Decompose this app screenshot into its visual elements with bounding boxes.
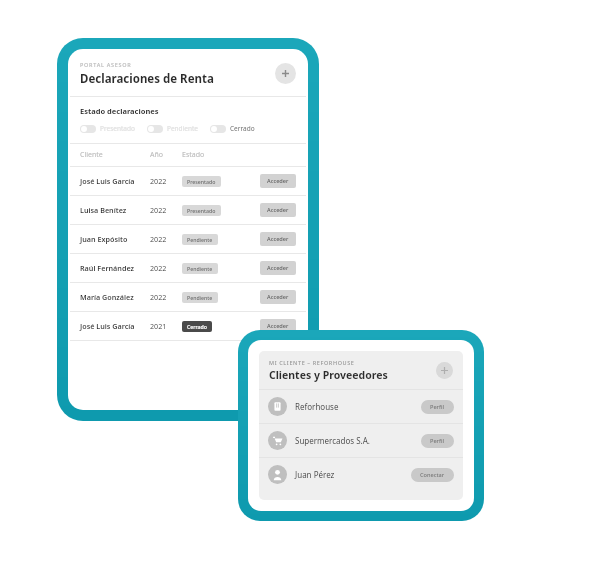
staticText: Perfil [430,437,445,445]
staticText: Pendiente [187,265,213,272]
staticText: Juan Pérez [295,469,411,480]
staticText: Pendiente [187,236,213,243]
staticText: 2022 [150,234,182,244]
button[interactable]: Acceder [260,203,296,217]
staticText: Año [150,150,182,160]
staticText: Acceder [267,206,289,214]
button[interactable]: José Luis García [70,312,306,340]
button[interactable]: Luisa Benítez [70,196,306,224]
staticText: Juan Expósito [80,234,150,244]
button[interactable]: Perfil [421,434,454,448]
staticText: Acceder [267,293,289,301]
button[interactable]: Acceder [260,174,296,188]
staticText: Raúl Fernández [80,263,150,273]
staticText: Clientes y Proveedores [269,368,388,382]
staticText: Pendiente [167,124,198,133]
button[interactable]: Añadir declaración [275,63,296,84]
staticText: María González [80,292,150,302]
button[interactable]: PORTAL ASESOR [70,51,306,96]
staticText: Perfil [430,403,445,411]
staticText: Estado [182,150,205,160]
button[interactable]: Juan Expósito [70,225,306,253]
staticText: 2022 [150,176,182,186]
button[interactable]: Conectar [411,468,454,482]
button[interactable]: Raúl Fernández [70,254,306,282]
staticText: 2022 [150,263,182,273]
staticText: Presentado [187,178,216,185]
button[interactable]: José Luis García [70,167,306,195]
staticText: 2021 [150,321,182,331]
button[interactable]: Juan Pérez [259,458,463,491]
staticText: Presentado [100,124,135,133]
staticText: Supermercados S.A. [295,435,421,446]
staticText: Cliente [80,150,150,160]
button[interactable]: Pendiente [147,124,198,133]
staticText: 2022 [150,205,182,215]
staticText: Luisa Benítez [80,205,150,215]
button[interactable]: Acceder [260,261,296,275]
button[interactable]: Acceder [260,232,296,246]
staticText: 2022 [150,292,182,302]
button[interactable]: Supermercados S.A. [259,424,463,457]
staticText: Reforhouse [295,401,421,412]
staticText: Presentado [187,207,216,214]
button[interactable]: Cerrado [210,124,255,133]
staticText: Declaraciones de Renta [80,71,214,87]
staticText: PORTAL ASESOR [80,61,132,68]
button[interactable]: Acceder [260,319,296,333]
button[interactable]: Añadir cliente [436,362,453,379]
button[interactable]: María González [70,283,306,311]
staticText: Estado declaraciones [80,106,159,116]
staticText: Acceder [267,322,289,330]
staticText: Acceder [267,235,289,243]
button[interactable]: Perfil [421,400,454,414]
staticText: Conectar [420,471,445,479]
staticText: Cerrado [230,124,255,133]
staticText: Acceder [267,264,289,272]
staticText: MI CLIENTE – REFORHOUSE [269,359,355,366]
button[interactable]: Acceder [260,290,296,304]
button[interactable]: Reforhouse [259,390,463,423]
staticText: Acceder [267,177,289,185]
staticText: José Luis García [80,321,150,331]
staticText: Pendiente [187,294,213,301]
button[interactable]: MI CLIENTE – REFORHOUSE [259,351,463,389]
staticText: José Luis García [80,176,150,186]
button[interactable]: Presentado [80,124,135,133]
staticText: Cerrado [187,323,207,330]
